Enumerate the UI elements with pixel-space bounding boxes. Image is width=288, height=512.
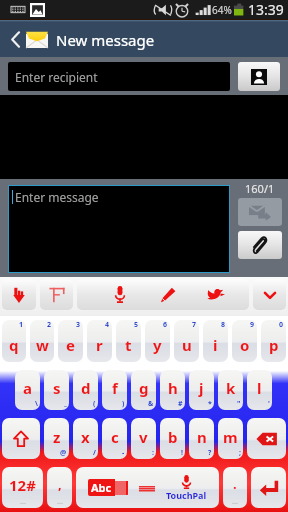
button[interactable]: t [116, 320, 141, 362]
button[interactable]: Send [238, 198, 282, 226]
staticText: 4 [105, 320, 110, 330]
button[interactable]: d [73, 370, 98, 410]
staticText: b [168, 427, 178, 447]
staticText: @ [60, 448, 67, 458]
button[interactable]: m [218, 418, 243, 459]
staticText: l [257, 378, 262, 398]
staticText: Enter message [15, 189, 99, 205]
button[interactable]: k [218, 370, 243, 410]
staticText: 13:39 [248, 0, 284, 19]
button[interactable]: q [2, 320, 26, 362]
staticText: j [199, 378, 204, 398]
staticText: e [66, 335, 75, 355]
button[interactable]: f [102, 370, 127, 410]
button[interactable]: p [261, 320, 286, 362]
staticText: New message [56, 30, 155, 50]
button[interactable]: l [247, 370, 272, 410]
button[interactable]: c [102, 418, 127, 459]
staticText: 64% [212, 3, 232, 17]
staticText: 1 [19, 320, 24, 330]
staticText: m [223, 427, 238, 447]
staticText: z [53, 427, 61, 447]
staticText: ) [122, 399, 125, 409]
button[interactable]: h [160, 370, 185, 410]
button[interactable]: g [131, 370, 156, 410]
staticText: r [96, 335, 103, 355]
button[interactable]: Twitter [199, 279, 233, 310]
staticText: * [208, 399, 212, 409]
button[interactable]: e [58, 320, 83, 362]
button[interactable]: j [189, 370, 214, 410]
staticText: y [153, 335, 162, 355]
staticText: a [23, 378, 32, 398]
staticText: t [125, 335, 132, 355]
button[interactable]: a [15, 370, 40, 410]
staticText: ... [232, 497, 238, 507]
button[interactable]: Enter recipient [8, 62, 230, 91]
staticText: u [182, 335, 192, 355]
staticText: q [9, 335, 19, 355]
staticText: w [36, 335, 49, 355]
staticText: 5 [134, 320, 139, 330]
button[interactable]: Pick contact [238, 62, 280, 91]
button[interactable]: , [47, 467, 72, 508]
staticText: : [152, 448, 154, 458]
button[interactable]: n [189, 418, 214, 459]
button[interactable]: y [145, 320, 170, 362]
staticText: # [178, 399, 183, 409]
staticText: 9 [250, 320, 255, 330]
button[interactable]: i [203, 320, 228, 362]
button[interactable]: b [160, 418, 185, 459]
staticText: . [233, 475, 237, 493]
staticText: ... [20, 497, 26, 507]
staticText: / [93, 448, 96, 458]
staticText: 12# [9, 475, 36, 495]
button[interactable]: Handwriting [151, 279, 185, 310]
staticText: 2 [47, 320, 52, 330]
staticText: ! [181, 448, 183, 458]
staticText: ? [208, 448, 212, 458]
button[interactable]: Attach [238, 231, 282, 259]
staticText: v [139, 427, 148, 447]
button[interactable]: r [87, 320, 112, 362]
staticText: 8 [221, 320, 226, 330]
button[interactable]: Shift [2, 418, 40, 459]
staticText: & [148, 399, 154, 409]
button[interactable]: Enter [251, 467, 286, 508]
button[interactable]: Back [4, 22, 26, 57]
button[interactable]: 12# [2, 467, 43, 508]
button[interactable]: Space [76, 467, 219, 508]
button[interactable]: Enter message [8, 185, 230, 273]
staticText: x [81, 427, 90, 447]
staticText: i [213, 335, 218, 355]
staticText: 7 [192, 320, 197, 330]
button[interactable]: Language [40, 279, 73, 310]
button[interactable]: Handwriting [2, 279, 36, 310]
staticText: s [53, 378, 61, 398]
staticText: ; [239, 448, 241, 458]
staticText: d [81, 378, 91, 398]
button[interactable]: Collapse [253, 279, 286, 310]
staticText: f [112, 378, 118, 398]
button[interactable]: x [73, 418, 98, 459]
button[interactable]: . [223, 467, 247, 508]
staticText: c [111, 427, 119, 447]
button[interactable]: z [44, 418, 69, 459]
button[interactable]: Voice input [103, 279, 137, 310]
button[interactable]: u [174, 320, 199, 362]
staticText: TouchPal [166, 489, 207, 501]
staticText: 6 [163, 320, 168, 330]
button[interactable]: w [30, 320, 54, 362]
button[interactable]: s [44, 370, 69, 410]
staticText: , [58, 475, 62, 493]
staticText: h [168, 378, 178, 398]
staticText: p [269, 335, 279, 355]
button[interactable]: Backspace [247, 418, 286, 459]
button[interactable]: v [131, 418, 156, 459]
staticText: Enter recipient [15, 69, 98, 85]
staticText: - [122, 448, 125, 458]
staticText: k [226, 378, 236, 398]
staticText: o [240, 335, 250, 355]
button[interactable]: o [232, 320, 257, 362]
staticText: 0 [279, 320, 284, 330]
